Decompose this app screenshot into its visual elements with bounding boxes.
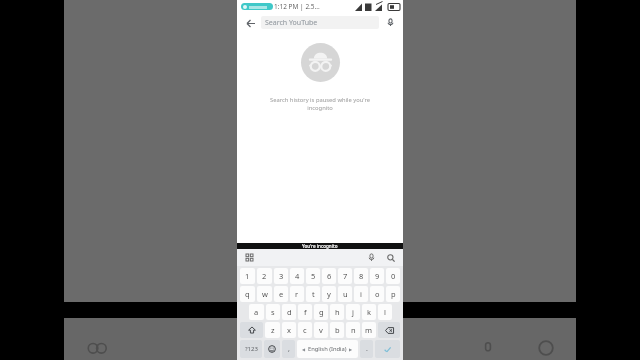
button[interactable]: q [240, 286, 255, 302]
staticText: 4 [295, 271, 300, 281]
staticText: d [287, 307, 292, 317]
button[interactable]: w [257, 286, 272, 302]
button[interactable]: g [314, 304, 328, 320]
button[interactable]: m [362, 322, 376, 338]
staticText: y [327, 289, 331, 299]
button[interactable]: Enter [375, 340, 400, 358]
staticText: a [254, 307, 259, 317]
staticText: i [360, 289, 362, 299]
button[interactable]: l [378, 304, 392, 320]
staticText: e [279, 289, 284, 299]
staticText: 6 [327, 271, 332, 281]
button[interactable]: s [266, 304, 280, 320]
staticText: j [352, 307, 354, 317]
staticText: r [295, 289, 299, 299]
staticText: m [365, 325, 373, 335]
button[interactable]: 6 [322, 268, 336, 284]
button[interactable]: 1 [240, 268, 255, 284]
staticText: z [271, 325, 275, 335]
button[interactable]: Shift [240, 322, 263, 338]
staticText: p [391, 289, 396, 299]
button[interactable]: u [338, 286, 352, 302]
button[interactable]: a [249, 304, 264, 320]
button[interactable]: p [386, 286, 400, 302]
button[interactable]: Symbols [240, 340, 262, 358]
staticText: You're incognito [302, 243, 338, 249]
staticText: 2 [262, 271, 267, 281]
staticText: 3 [279, 271, 284, 281]
staticText: Search YouTube [265, 18, 318, 28]
button[interactable]: f [298, 304, 312, 320]
staticText: u [343, 289, 348, 299]
button[interactable]: v [314, 322, 328, 338]
staticText: c [303, 325, 307, 335]
button[interactable]: j [346, 304, 360, 320]
staticText: k [367, 307, 372, 317]
staticText: s [271, 307, 275, 317]
staticText: 9 [375, 271, 380, 281]
button[interactable]: Back [242, 15, 258, 31]
staticText: . [366, 344, 368, 354]
staticText: English (India) [308, 345, 347, 353]
staticText: n [351, 325, 356, 335]
staticText: ?123 [245, 345, 258, 353]
button[interactable]: o [370, 286, 384, 302]
staticText: v [319, 325, 323, 335]
button[interactable]: 0 [386, 268, 400, 284]
button[interactable]: Backspace [378, 322, 400, 338]
button[interactable]: Search YouTube [261, 16, 379, 29]
staticText: 8 [359, 271, 364, 281]
staticText: Search history is paused while you're in… [255, 96, 385, 112]
staticText: b [335, 325, 340, 335]
button[interactable]: 4 [290, 268, 304, 284]
button[interactable]: c [298, 322, 312, 338]
button[interactable]: r [290, 286, 304, 302]
staticText: g [319, 307, 324, 317]
button[interactable]: ◀ [297, 340, 358, 358]
staticText: l [384, 307, 386, 317]
button[interactable]: Emoji [264, 340, 280, 358]
staticText: t [312, 289, 315, 299]
button[interactable]: 5 [306, 268, 320, 284]
button[interactable]: x [282, 322, 296, 338]
button[interactable]: 3 [274, 268, 288, 284]
button[interactable]: t [306, 286, 320, 302]
button[interactable]: Comma [282, 340, 295, 358]
staticText: 1:12 PM | 2.5... [274, 2, 320, 11]
staticText: ▶ [349, 347, 353, 352]
button[interactable]: Toolbar [243, 251, 256, 264]
staticText: 1 [245, 271, 250, 281]
button[interactable]: h [330, 304, 344, 320]
button[interactable]: 2 [257, 268, 272, 284]
staticText: 0 [391, 271, 396, 281]
button[interactable]: Voice input [365, 251, 378, 264]
button[interactable]: z [265, 322, 280, 338]
staticText: w [262, 289, 268, 299]
button[interactable]: b [330, 322, 344, 338]
button[interactable]: e [274, 286, 288, 302]
staticText: h [335, 307, 340, 317]
staticText: q [245, 289, 250, 299]
staticText: f [304, 307, 307, 317]
button[interactable]: d [282, 304, 296, 320]
button[interactable]: k [362, 304, 376, 320]
button[interactable]: y [322, 286, 336, 302]
staticText: x [287, 325, 291, 335]
staticText: , [288, 344, 290, 354]
button[interactable]: Search [384, 251, 397, 264]
button[interactable]: Voice search [383, 15, 398, 30]
button[interactable]: 8 [354, 268, 368, 284]
button[interactable]: 9 [370, 268, 384, 284]
button[interactable]: n [346, 322, 360, 338]
button[interactable]: Period [360, 340, 373, 358]
staticText: ◀ [302, 347, 306, 352]
staticText: 5 [311, 271, 316, 281]
staticText: 7 [343, 271, 348, 281]
staticText: o [375, 289, 380, 299]
button[interactable]: i [354, 286, 368, 302]
button[interactable]: 7 [338, 268, 352, 284]
